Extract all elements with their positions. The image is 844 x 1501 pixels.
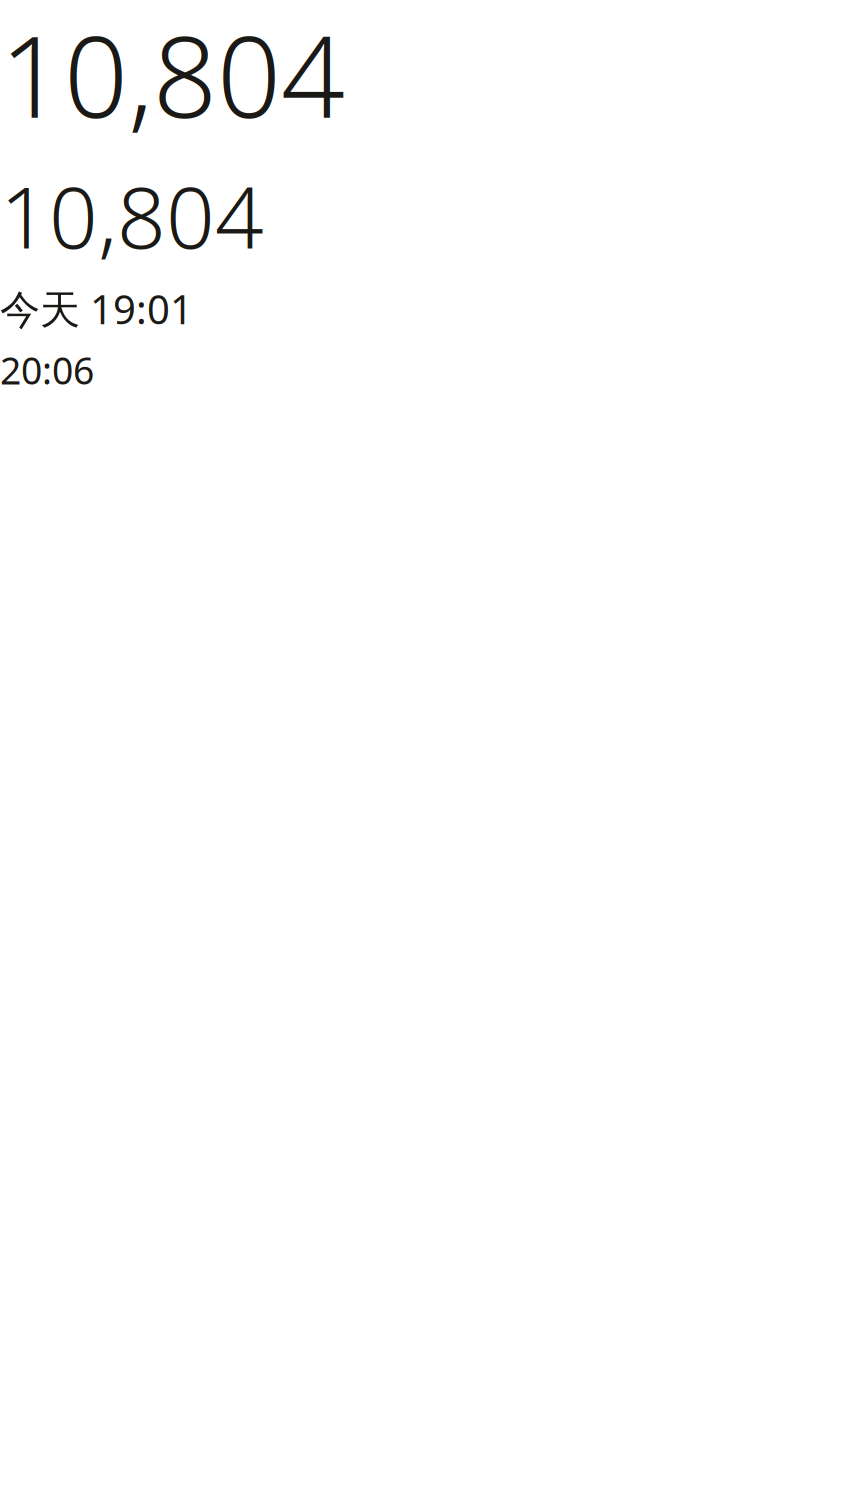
- staticText: 20:06: [0, 345, 94, 395]
- staticText: 10,804: [0, 159, 264, 272]
- staticText: 10,804: [0, 0, 345, 149]
- staticText: 今天 19:01: [0, 282, 193, 335]
